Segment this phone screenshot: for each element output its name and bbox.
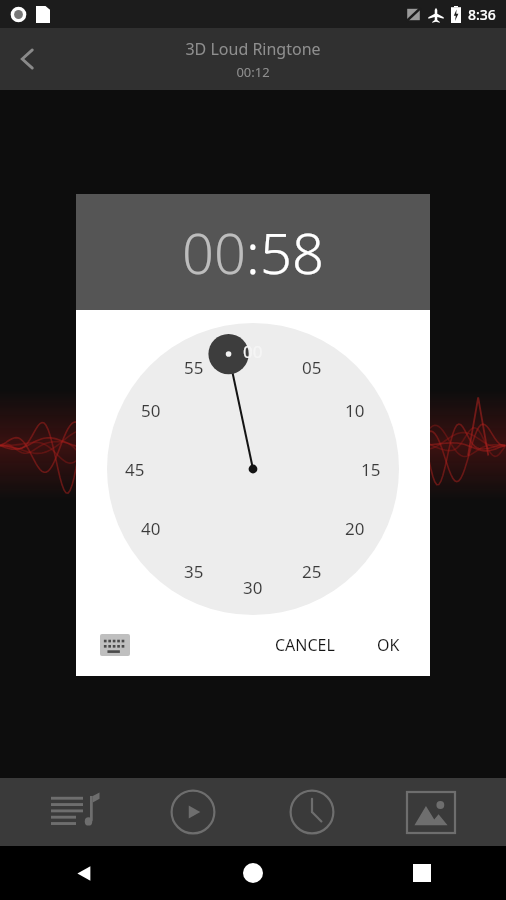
button[interactable]: Recents [337,846,506,900]
staticText: 35 [184,560,204,583]
button[interactable]: Image [371,778,490,846]
staticText: 55 [184,356,204,379]
staticText: OK [377,634,400,656]
staticText: 10 [345,399,365,422]
button[interactable]: Timer [252,778,371,846]
staticText: 15 [361,458,381,481]
staticText: 50 [141,399,161,422]
button[interactable]: Switch to keyboard input [98,632,132,658]
button[interactable]: 00 [107,323,399,615]
staticText: 30 [243,576,263,599]
button[interactable]: CANCEL [265,624,345,666]
staticText: 20 [345,517,365,540]
staticText: 8:36 [468,5,496,24]
staticText: 05 [302,356,322,379]
button[interactable]: Play [134,778,252,846]
staticText: CANCEL [275,634,335,656]
button[interactable]: Home [168,846,337,900]
staticText: 00 [243,340,263,363]
button[interactable]: 58 [260,214,324,290]
button[interactable]: Back [0,31,56,87]
staticText: 45 [125,458,145,481]
button[interactable]: OK [367,624,410,666]
staticText: 25 [302,560,322,583]
staticText: : [246,214,260,290]
button[interactable]: 00 [182,214,246,290]
button[interactable]: Playlist [16,778,134,846]
button[interactable]: Back [0,846,168,900]
staticText: 00:12 [236,63,270,81]
staticText: 3D Loud Ringtone [185,38,321,60]
staticText: 40 [141,517,161,540]
